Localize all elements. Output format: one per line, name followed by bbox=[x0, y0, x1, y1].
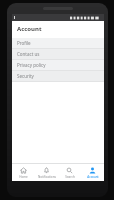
staticText: Home bbox=[19, 175, 28, 179]
button[interactable]: Contact us bbox=[12, 49, 104, 59]
button[interactable]: Profile bbox=[12, 38, 104, 48]
button[interactable]: Search bbox=[58, 164, 81, 181]
button[interactable]: Notifications bbox=[35, 164, 58, 181]
button[interactable]: Account bbox=[81, 164, 104, 181]
staticText: Notifications bbox=[38, 175, 56, 179]
button[interactable]: Security bbox=[12, 71, 104, 81]
button[interactable]: Home bbox=[12, 164, 35, 181]
button[interactable]: Privacy policy bbox=[12, 60, 104, 70]
staticText: Search bbox=[65, 175, 75, 179]
staticText: Security bbox=[17, 73, 34, 79]
staticText: Privacy policy bbox=[17, 62, 46, 68]
staticText: Contact us bbox=[17, 51, 40, 57]
staticText: Profile bbox=[17, 40, 31, 46]
staticText: Account bbox=[17, 25, 42, 33]
staticText: Account bbox=[87, 175, 99, 179]
